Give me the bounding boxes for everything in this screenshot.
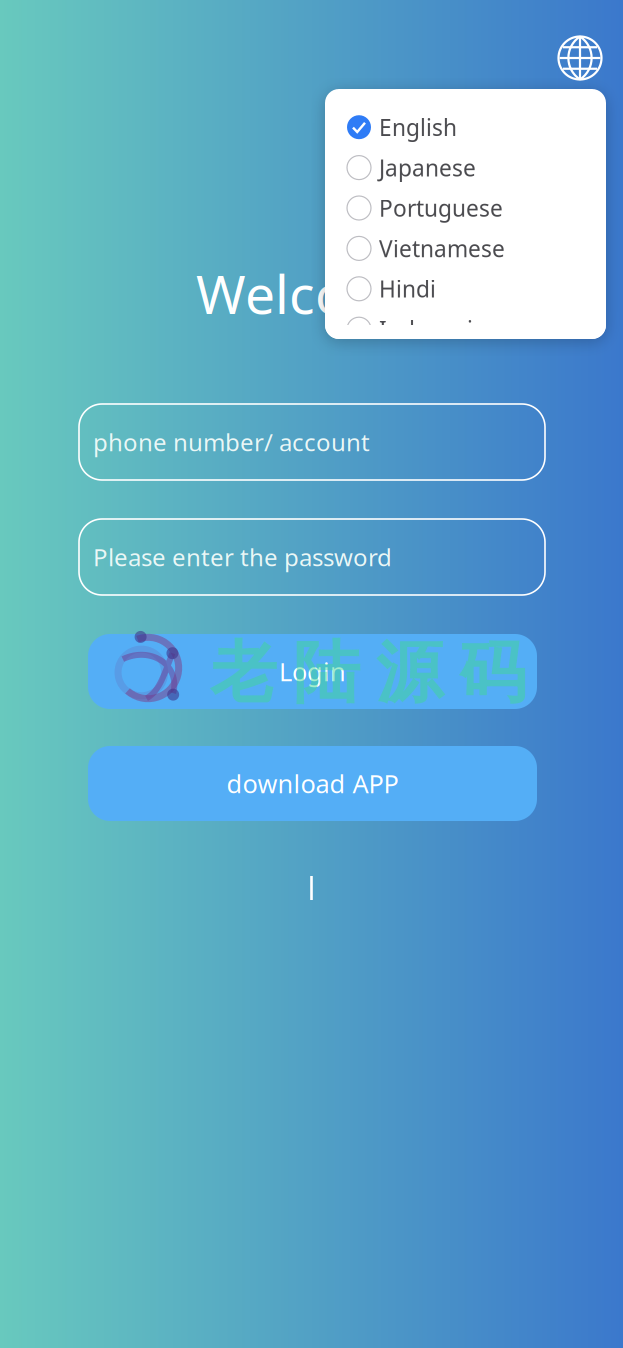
staticText: Japanese <box>379 152 476 183</box>
staticText: download APP <box>226 767 398 800</box>
button[interactable]: phone number/ account <box>79 404 545 480</box>
button[interactable]: Login <box>88 634 537 709</box>
staticText: English <box>379 112 457 142</box>
button[interactable]: Please enter the password <box>79 519 545 595</box>
staticText: Login <box>279 655 346 688</box>
button[interactable]: Indonesian <box>347 309 583 349</box>
button[interactable] <box>313 874 433 902</box>
button[interactable]: English <box>347 107 583 147</box>
button[interactable]: Vietnamese <box>347 228 583 269</box>
staticText: Indonesian <box>379 314 500 344</box>
staticText: Vietnamese <box>379 233 505 263</box>
staticText: 老陆源码 <box>210 632 526 714</box>
staticText: Welcome <box>196 258 427 329</box>
button[interactable] <box>190 874 310 902</box>
staticText: Portuguese <box>379 193 503 223</box>
staticText: phone number/ account <box>93 426 370 458</box>
staticText: Please enter the password <box>93 541 392 573</box>
button[interactable]: download APP <box>88 746 537 821</box>
button[interactable]: Hindi <box>347 269 583 309</box>
staticText: Hindi <box>379 274 436 304</box>
button[interactable]: Language <box>549 27 611 89</box>
button[interactable]: Portuguese <box>347 188 583 228</box>
button[interactable]: Japanese <box>347 147 583 188</box>
